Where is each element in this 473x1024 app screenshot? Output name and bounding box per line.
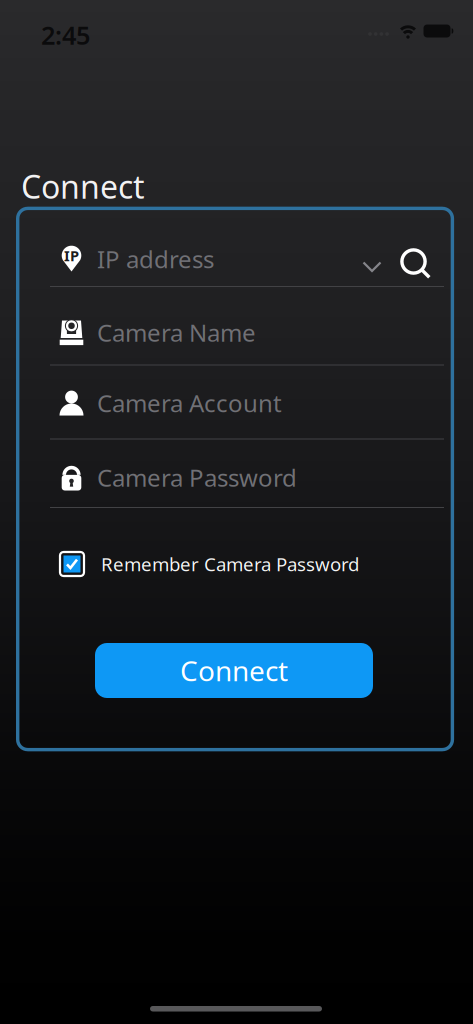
button[interactable]: Camera Password: [50, 451, 444, 503]
staticText: IP address: [97, 243, 214, 275]
button[interactable]: Camera Account: [50, 377, 444, 429]
staticText: Camera Account: [97, 387, 282, 419]
staticText: Remember Camera Password: [101, 552, 359, 576]
staticText: 2:45: [41, 18, 90, 52]
button[interactable]: [400, 248, 432, 282]
staticText: Connect: [21, 165, 145, 207]
button[interactable]: Camera Name: [50, 306, 444, 358]
button[interactable]: Remember Camera Password: [59, 549, 399, 579]
staticText: Camera Name: [97, 317, 256, 348]
staticText: IP: [64, 246, 79, 265]
staticText: Connect: [180, 652, 288, 689]
button[interactable]: Connect: [95, 643, 373, 698]
button[interactable]: [356, 251, 388, 283]
staticText: Camera Password: [97, 462, 297, 493]
button[interactable]: IP: [50, 233, 355, 285]
